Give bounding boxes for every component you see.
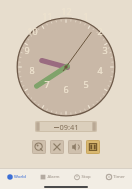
staticText: 2 xyxy=(97,25,103,37)
staticText: 9 xyxy=(24,44,30,56)
button[interactable]: Layout xyxy=(86,140,100,154)
button[interactable]: Analog clock xyxy=(16,17,116,117)
button[interactable]: Alarm xyxy=(33,174,66,180)
staticText: 3 xyxy=(102,44,108,56)
staticText: 09:41 xyxy=(59,122,79,132)
button[interactable]: Theme xyxy=(32,140,46,154)
staticText: 11 xyxy=(42,10,53,22)
staticText: 10 xyxy=(27,25,38,37)
button[interactable]: Sound xyxy=(68,140,82,154)
staticText: Alarm xyxy=(47,174,60,180)
staticText: World xyxy=(14,174,26,180)
staticText: 6 xyxy=(63,83,69,95)
staticText: 5 xyxy=(83,78,89,90)
staticText: Timer xyxy=(113,174,125,180)
button[interactable]: 09:41 xyxy=(35,121,97,132)
staticText: 7 xyxy=(44,78,50,90)
button[interactable]: Timer xyxy=(99,174,132,180)
button[interactable]: Randomize xyxy=(50,140,64,154)
button[interactable]: World xyxy=(0,174,33,180)
staticText: Stop xyxy=(81,174,91,180)
staticText: 1 xyxy=(83,10,89,22)
staticText: 4 xyxy=(97,64,103,76)
staticText: 8 xyxy=(29,64,35,76)
button[interactable]: Stop xyxy=(66,174,99,180)
